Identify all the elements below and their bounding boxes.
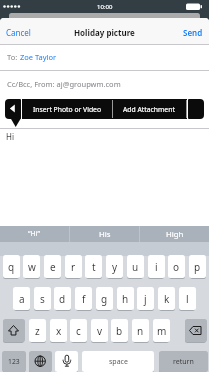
staticText: j	[144, 292, 147, 306]
staticText: n	[137, 324, 144, 338]
staticText: i	[155, 260, 158, 274]
button[interactable]: h	[117, 287, 134, 310]
staticText: s	[40, 292, 45, 306]
button[interactable]: y	[106, 255, 123, 278]
staticText: d	[59, 292, 66, 306]
staticText: Holiday picture	[74, 27, 135, 38]
staticText: h	[122, 292, 129, 306]
staticText: Cancel	[6, 27, 31, 38]
staticText: z	[35, 324, 40, 338]
button[interactable]: g	[96, 287, 113, 310]
staticText: g	[101, 292, 108, 306]
button[interactable]: d	[54, 287, 71, 310]
button[interactable]: j	[137, 287, 154, 310]
button[interactable]: a	[13, 287, 30, 310]
button[interactable]: Send	[175, 25, 203, 39]
staticText: Hi	[6, 131, 14, 142]
button[interactable]: p	[189, 255, 206, 278]
button[interactable]: o	[168, 255, 185, 278]
button[interactable]: space	[82, 351, 154, 372]
button[interactable]: s	[34, 287, 51, 310]
button[interactable]	[3, 319, 25, 342]
staticText: High	[166, 229, 184, 240]
staticText: x	[56, 324, 62, 338]
button[interactable]: i	[148, 255, 165, 278]
button[interactable]: Add Attachment	[113, 99, 185, 119]
button[interactable]	[188, 99, 204, 119]
button[interactable]: v	[91, 319, 108, 342]
button[interactable]: c	[70, 319, 87, 342]
staticText: “Hi”	[28, 229, 41, 239]
button[interactable]: Cc/Bcc, From: aj@groupwm.com	[7, 71, 167, 97]
staticText: e	[50, 260, 56, 274]
staticText: a	[19, 292, 25, 306]
button[interactable]: return	[159, 351, 208, 372]
button[interactable]: n	[132, 319, 149, 342]
staticText: m	[157, 324, 167, 338]
button[interactable]: t	[85, 255, 102, 278]
button[interactable]: b	[111, 319, 128, 342]
button[interactable]: u	[127, 255, 144, 278]
staticText: y	[112, 260, 118, 274]
staticText: k	[164, 292, 170, 306]
staticText: b	[116, 324, 123, 338]
staticText: return	[173, 357, 194, 367]
staticText: To:	[7, 52, 20, 62]
staticText: q	[8, 260, 15, 274]
button[interactable]: 123	[2, 351, 26, 372]
staticText: 123	[8, 357, 20, 366]
staticText: space	[109, 357, 128, 367]
button[interactable]: Cancel	[6, 25, 36, 39]
staticText: Cc/Bcc, From: aj@groupwm.com	[7, 79, 121, 89]
button[interactable]: l	[179, 287, 196, 310]
button[interactable]: x	[50, 319, 67, 342]
staticText: w	[28, 260, 36, 274]
button[interactable]: q	[3, 255, 20, 278]
button[interactable]: z	[29, 319, 46, 342]
staticText: Zoe Taylor	[20, 52, 57, 62]
button[interactable]: f	[75, 287, 92, 310]
staticText: Insert Photo or Video	[33, 105, 102, 114]
staticText: p	[194, 260, 201, 274]
button[interactable]	[55, 351, 78, 372]
staticText: t	[92, 260, 96, 274]
button[interactable]: k	[158, 287, 175, 310]
button[interactable]	[29, 351, 52, 372]
button[interactable]: High	[140, 226, 209, 242]
button[interactable]	[5, 99, 21, 119]
button[interactable]: His	[70, 226, 139, 242]
staticText: f	[82, 292, 86, 306]
button[interactable]: m	[153, 319, 170, 342]
button[interactable]: Insert Photo or Video	[24, 99, 110, 119]
staticText: Add Attachment	[123, 105, 175, 114]
button[interactable]: “Hi”	[0, 226, 69, 242]
button[interactable]: To:	[0, 44, 209, 70]
button[interactable]: e	[44, 255, 61, 278]
staticText: l	[186, 292, 189, 306]
button[interactable]	[185, 319, 207, 342]
staticText: Send	[183, 27, 203, 38]
staticText: o	[173, 260, 180, 274]
staticText: His	[99, 229, 111, 240]
button[interactable]: w	[23, 255, 40, 278]
staticText: v	[97, 324, 103, 338]
staticText: 10:00	[97, 3, 113, 11]
staticText: u	[132, 260, 139, 274]
button[interactable]: r	[65, 255, 82, 278]
staticText: c	[76, 324, 81, 338]
staticText: r	[71, 260, 76, 274]
